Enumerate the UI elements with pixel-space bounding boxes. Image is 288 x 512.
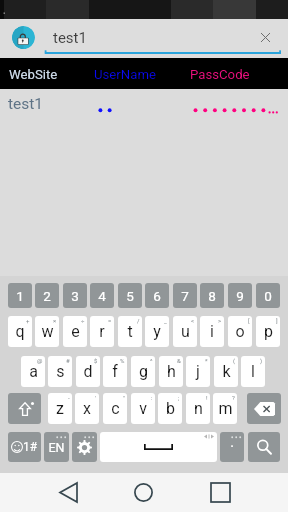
staticText: $ <box>94 357 98 364</box>
staticText: 8 <box>208 288 216 304</box>
button[interactable]: App icon <box>12 26 35 49</box>
staticText: g <box>139 362 148 381</box>
button[interactable]: t <box>118 316 142 347</box>
button[interactable]: c <box>103 393 127 424</box>
staticText: / <box>137 317 140 324</box>
staticText: _ <box>164 317 167 324</box>
staticText: ( <box>233 357 236 364</box>
button[interactable]: Space <box>100 432 217 462</box>
staticText: 1# <box>23 440 38 454</box>
button[interactable]: f <box>103 356 127 387</box>
staticText: ^ <box>150 357 153 364</box>
staticText: > <box>218 317 222 324</box>
staticText: s <box>56 362 65 381</box>
button[interactable]: Backspace <box>247 393 281 424</box>
button[interactable]: Recent apps <box>200 473 240 512</box>
staticText: w <box>41 322 54 341</box>
staticText: i <box>210 322 214 341</box>
button[interactable]: 0 <box>256 283 280 308</box>
staticText: : <box>151 394 153 401</box>
button[interactable]: k <box>214 356 238 387</box>
staticText: m <box>218 399 233 418</box>
button[interactable]: Keyboard settings <box>72 432 97 462</box>
button[interactable]: a <box>21 356 45 387</box>
staticText: 7 <box>181 288 189 304</box>
staticText: EN <box>48 440 65 455</box>
button[interactable]: 7 <box>173 283 197 308</box>
staticText: × <box>53 317 57 324</box>
button[interactable]: y <box>145 316 169 347</box>
button[interactable]: 1 <box>8 283 32 308</box>
button[interactable]: l <box>241 356 265 387</box>
button[interactable]: w <box>35 316 59 347</box>
staticText: h <box>167 362 176 381</box>
button[interactable]: r <box>90 316 114 347</box>
staticText: 4 <box>98 288 106 304</box>
button[interactable]: d <box>76 356 100 387</box>
button[interactable]: test1 <box>0 89 288 121</box>
button[interactable]: x <box>75 393 99 424</box>
button[interactable]: q <box>8 316 32 347</box>
staticText: = <box>108 317 112 324</box>
button[interactable]: i <box>200 316 224 347</box>
button[interactable]: 2 <box>35 283 59 308</box>
button[interactable]: EN <box>44 432 69 462</box>
button[interactable]: u <box>173 316 197 347</box>
staticText: ; <box>178 394 180 401</box>
staticText: test1 <box>8 95 44 113</box>
button[interactable]: e <box>63 316 87 347</box>
staticText: c <box>111 399 120 418</box>
staticText: p <box>264 322 273 341</box>
staticText: u <box>181 322 190 341</box>
staticText: test1 <box>53 29 87 47</box>
button[interactable]: h <box>159 356 183 387</box>
staticText: k <box>222 362 231 381</box>
staticText: z <box>56 399 64 418</box>
staticText: 0 <box>264 288 272 304</box>
button[interactable]: z <box>48 393 72 424</box>
button[interactable]: o <box>228 316 252 347</box>
button[interactable]: s <box>48 356 72 387</box>
staticText: ) <box>260 357 263 364</box>
button[interactable]: Shift <box>8 393 41 424</box>
staticText: v <box>139 399 147 418</box>
button[interactable]: j <box>186 356 210 387</box>
staticText: * <box>205 357 208 364</box>
staticText: n <box>194 399 203 418</box>
staticText: 1 <box>16 288 24 304</box>
staticText: ÷ <box>81 317 85 324</box>
staticText: " <box>123 394 125 401</box>
button[interactable]: · <box>220 432 244 462</box>
button[interactable]: 4 <box>90 283 114 308</box>
button[interactable]: 6 <box>145 283 169 308</box>
staticText: d <box>83 362 93 381</box>
button[interactable]: Back <box>48 473 88 512</box>
button[interactable]: v <box>131 393 155 424</box>
button[interactable]: Search <box>248 432 280 462</box>
button[interactable]: Home <box>123 473 163 512</box>
button[interactable]: 3 <box>63 283 87 308</box>
staticText: % <box>120 357 125 364</box>
staticText: ' <box>95 394 97 401</box>
button[interactable]: 5 <box>118 283 142 308</box>
staticText: t <box>127 322 133 341</box>
staticText: [ <box>248 317 250 324</box>
staticText: · <box>230 439 234 455</box>
staticText: a <box>29 362 38 381</box>
button[interactable]: 9 <box>228 283 252 308</box>
staticText: o <box>235 322 245 341</box>
staticText: q <box>15 322 25 341</box>
staticText: PassCode <box>190 67 250 82</box>
staticText: 2 <box>43 288 51 304</box>
staticText: 5 <box>126 288 134 304</box>
button[interactable]: b <box>158 393 182 424</box>
button[interactable]: 8 <box>200 283 224 308</box>
button[interactable]: g <box>131 356 155 387</box>
button[interactable]: m <box>213 393 237 424</box>
button[interactable]: n <box>186 393 210 424</box>
button[interactable]: p <box>256 316 280 347</box>
staticText: x <box>83 399 91 418</box>
button[interactable]: Clear text <box>255 27 276 48</box>
staticText: WebSite <box>9 67 58 82</box>
button[interactable]: Symbols and emoji <box>8 432 41 462</box>
